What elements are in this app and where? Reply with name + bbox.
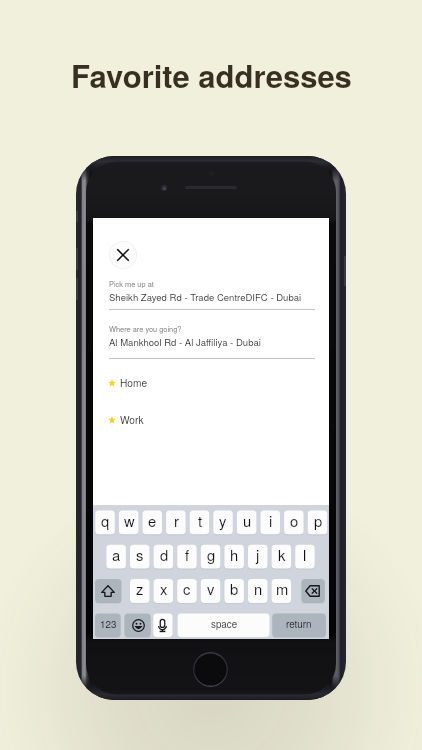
staticText: v	[207, 578, 215, 599]
staticText: k	[278, 544, 286, 565]
staticText: Where are you going?	[109, 324, 182, 335]
staticText: t	[198, 510, 203, 531]
button[interactable]: s	[130, 545, 150, 569]
staticText: s	[136, 544, 144, 565]
button[interactable]: a	[106, 545, 126, 569]
button[interactable]: g	[201, 545, 221, 569]
staticText: p	[314, 510, 323, 531]
button[interactable]: v	[201, 579, 221, 603]
button[interactable]: space	[178, 613, 270, 637]
staticText: n	[254, 578, 263, 599]
staticText: y	[219, 510, 227, 531]
staticText: e	[148, 510, 157, 531]
button[interactable]: Where are you going?	[93, 324, 329, 359]
staticText: Favorite addresses	[71, 53, 352, 97]
button[interactable]: m	[272, 579, 292, 603]
button[interactable]: z	[130, 579, 150, 603]
staticText: a	[112, 544, 121, 565]
button[interactable]: Home	[193, 652, 228, 687]
button[interactable]: j	[248, 545, 268, 569]
staticText: q	[101, 510, 110, 531]
button[interactable]: q	[95, 511, 115, 535]
staticText: o	[290, 510, 299, 531]
button[interactable]: Dictation	[153, 613, 172, 637]
button[interactable]: Close	[109, 241, 137, 269]
button[interactable]: y	[213, 511, 233, 535]
button[interactable]: p	[308, 511, 328, 535]
button[interactable]: h	[224, 545, 244, 569]
button[interactable]: Pick me up at	[93, 279, 329, 310]
staticText: z	[136, 578, 144, 599]
button[interactable]: u	[237, 511, 257, 535]
button[interactable]: f	[177, 545, 197, 569]
button[interactable]: l	[295, 545, 315, 569]
button[interactable]: w	[119, 511, 139, 535]
button[interactable]: b	[224, 579, 244, 603]
staticText: Al Mankhool Rd - Al Jaffiliya - Dubai	[109, 335, 261, 349]
staticText: d	[160, 544, 169, 565]
button[interactable]: i	[261, 511, 281, 535]
button[interactable]: o	[284, 511, 304, 535]
button[interactable]: Backspace	[301, 579, 324, 603]
button[interactable]: e	[142, 511, 162, 535]
staticText: 123	[100, 617, 117, 631]
staticText: space	[211, 617, 238, 631]
button[interactable]: x	[154, 579, 174, 603]
button[interactable]: c	[177, 579, 197, 603]
staticText: return	[286, 617, 312, 631]
staticText: c	[183, 578, 191, 599]
button[interactable]: r	[166, 511, 186, 535]
button[interactable]: Shift	[95, 579, 121, 603]
button[interactable]: return	[272, 613, 326, 637]
staticText: j	[256, 544, 260, 565]
staticText: Pick me up at	[109, 279, 154, 290]
staticText: l	[303, 544, 307, 565]
button[interactable]: Emoji	[125, 613, 151, 637]
staticText: f	[185, 544, 190, 565]
button[interactable]: d	[154, 545, 174, 569]
staticText: x	[160, 578, 168, 599]
button[interactable]: 123	[95, 613, 121, 637]
staticText: Work	[120, 412, 144, 427]
button[interactable]: Work	[93, 412, 329, 427]
staticText: Home	[120, 375, 148, 390]
staticText: u	[243, 510, 252, 531]
staticText: i	[269, 510, 273, 531]
staticText: Sheikh Zayed Rd - Trade CentreDIFC - Dub…	[109, 290, 302, 304]
staticText: w	[124, 510, 135, 531]
staticText: r	[174, 510, 179, 531]
button[interactable]: Home	[93, 375, 329, 390]
staticText: b	[230, 578, 239, 599]
staticText: h	[230, 544, 239, 565]
staticText: m	[276, 578, 289, 599]
staticText: g	[207, 544, 216, 565]
button[interactable]: k	[272, 545, 292, 569]
button[interactable]: t	[190, 511, 210, 535]
button[interactable]: n	[248, 579, 268, 603]
